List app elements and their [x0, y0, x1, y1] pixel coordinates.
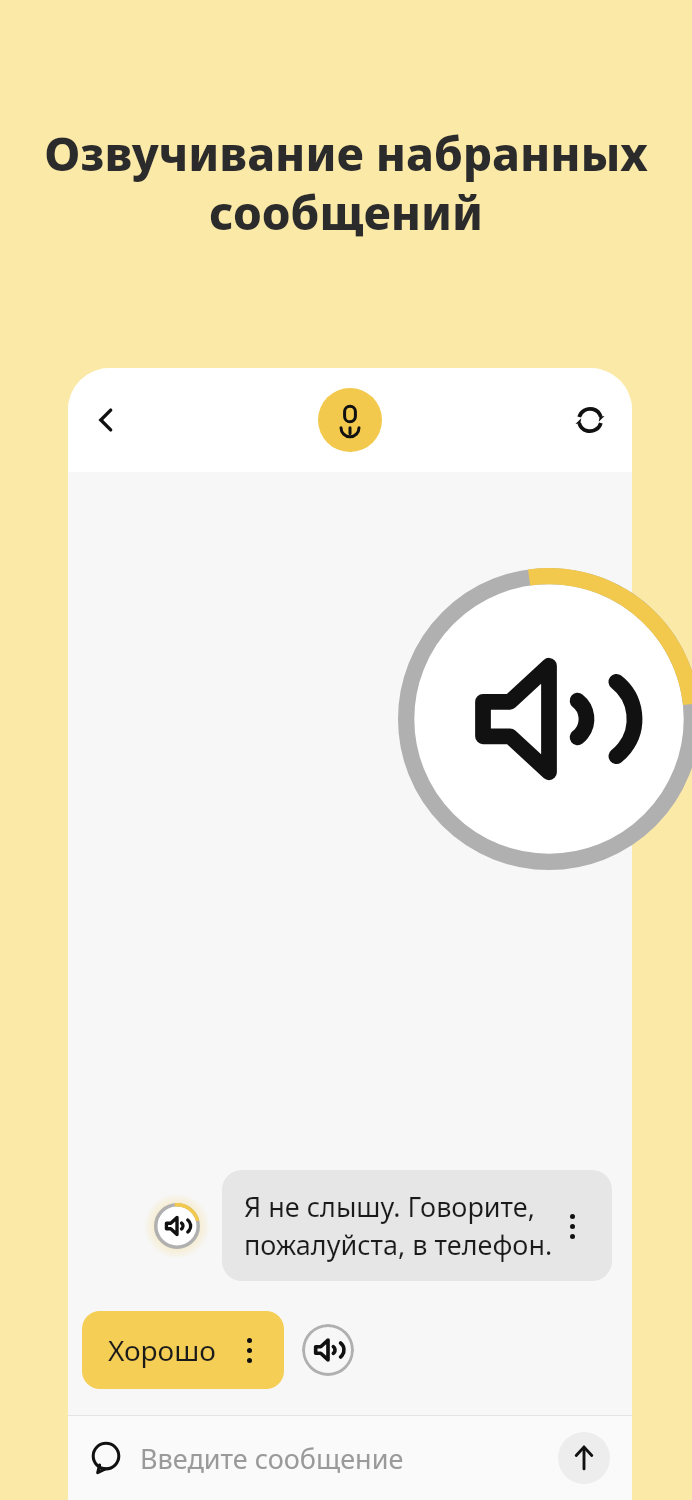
staticText: Озвучивание набранных сообщений: [44, 122, 648, 243]
button[interactable]: Send: [558, 1432, 610, 1484]
button[interactable]: Speak aloud: [398, 568, 692, 870]
button[interactable]: Хорошо: [82, 1311, 284, 1389]
button[interactable]: More options: [554, 1208, 590, 1244]
button[interactable]: Play message: [302, 1324, 354, 1376]
button[interactable]: Microphone: [318, 388, 382, 452]
button[interactable]: Back: [78, 392, 134, 448]
staticText: Я не слышу. Говорите, пожалуйста, в теле…: [244, 1188, 554, 1263]
staticText: Хорошо: [108, 1331, 216, 1369]
button[interactable]: Switch language: [562, 392, 618, 448]
button[interactable]: Я не слышу. Говорите, пожалуйста, в теле…: [222, 1170, 612, 1281]
staticText: Введите сообщение: [140, 1440, 558, 1477]
